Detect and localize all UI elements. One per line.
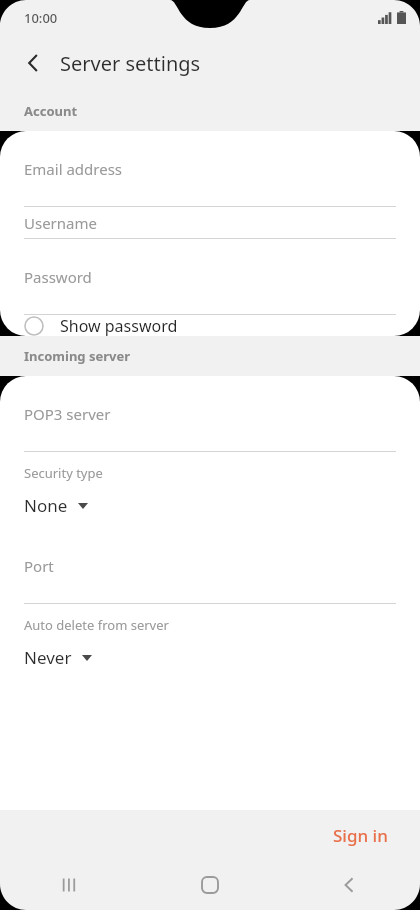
button[interactable]: Recents [0, 860, 140, 910]
button[interactable]: Port [0, 528, 420, 604]
staticText: Port [24, 556, 54, 576]
button[interactable]: Sign in [323, 818, 398, 853]
staticText: 10:00 [24, 9, 58, 27]
staticText: Password [24, 267, 92, 287]
button[interactable]: Security type [0, 452, 420, 528]
staticText: Auto delete from server [24, 616, 169, 634]
button[interactable]: Password [0, 239, 420, 315]
staticText: Show password [60, 315, 178, 336]
button[interactable]: Show password [0, 315, 420, 336]
button[interactable]: POP3 server [0, 376, 420, 452]
staticText: POP3 server [24, 404, 111, 424]
staticText: Account [24, 102, 78, 120]
staticText: Sign in [333, 824, 388, 847]
button[interactable]: Back [280, 860, 420, 910]
staticText: Never [24, 646, 72, 669]
button[interactable]: Home [140, 860, 280, 910]
staticText: Email address [24, 159, 123, 179]
button[interactable]: Username [0, 207, 420, 239]
button[interactable]: Email address [0, 131, 420, 207]
staticText: Server settings [60, 50, 201, 77]
staticText: None [24, 494, 68, 517]
button[interactable]: Back [12, 41, 56, 85]
staticText: Incoming server [24, 347, 131, 365]
button[interactable]: Auto delete from server [0, 604, 420, 680]
staticText: Security type [24, 464, 103, 482]
staticText: Username [24, 213, 97, 233]
